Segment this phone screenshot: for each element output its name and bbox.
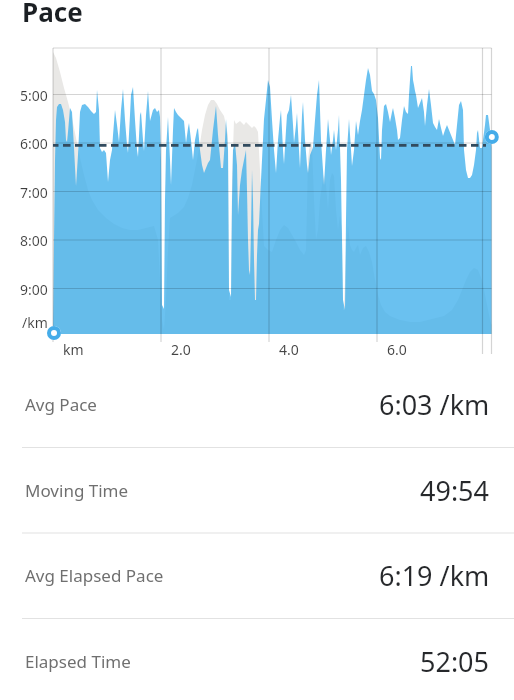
staticText: 6.0 (387, 340, 407, 359)
staticText: Avg Elapsed Pace (25, 564, 164, 587)
staticText: 6:03 /km (379, 386, 490, 423)
staticText: 2.0 (171, 340, 191, 359)
staticText: 5:00 (20, 86, 48, 105)
staticText: 7:00 (20, 183, 48, 202)
staticText: /km (22, 313, 48, 332)
staticText: Moving Time (25, 479, 129, 502)
button[interactable]: Moving Time (0, 448, 514, 533)
staticText: 8:00 (20, 231, 48, 250)
staticText: 4.0 (279, 340, 299, 359)
staticText: 49:54 (420, 472, 490, 509)
staticText: Avg Pace (25, 393, 97, 416)
staticText: 6:00 (20, 134, 48, 153)
staticText: 6:19 /km (379, 557, 490, 594)
staticText: km (63, 340, 84, 359)
staticText: 9:00 (20, 280, 48, 299)
staticText: Elapsed Time (25, 650, 131, 673)
button[interactable]: Avg Pace (0, 362, 514, 447)
staticText: 52:05 (420, 643, 490, 680)
button[interactable]: Avg Elapsed Pace (0, 533, 514, 618)
button[interactable]: Elapsed Time (0, 619, 514, 700)
staticText: Pace (22, 0, 83, 26)
